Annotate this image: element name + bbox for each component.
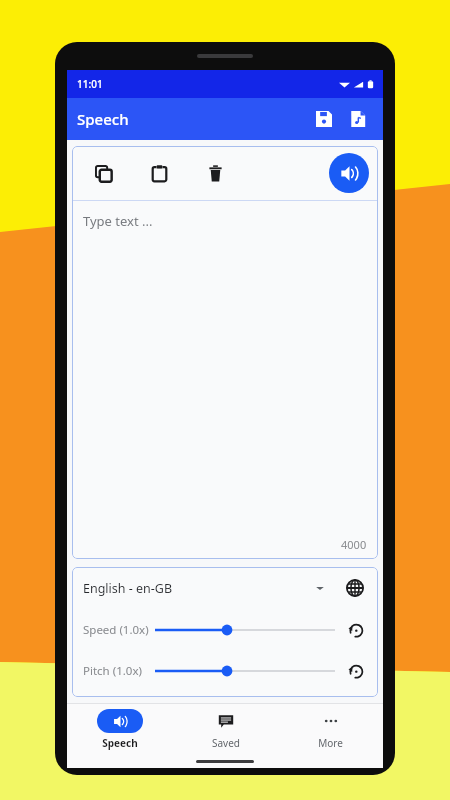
staticText: Speed (1.0x): [83, 622, 155, 638]
staticText: English - en-GB: [83, 580, 315, 597]
staticText: More: [318, 736, 343, 750]
button[interactable]: English - en-GB: [72, 567, 339, 609]
staticText: Speech: [77, 109, 307, 129]
staticText: 11:01: [77, 77, 103, 91]
button[interactable]: Paste: [141, 155, 177, 191]
staticText: Speech: [102, 736, 138, 750]
button[interactable]: Reset Speed (1.0x): [341, 615, 371, 645]
button[interactable]: Language settings: [339, 572, 371, 604]
button[interactable]: [155, 656, 335, 686]
button[interactable]: Saved: [173, 704, 278, 754]
staticText: Saved: [212, 736, 240, 750]
button[interactable]: Reset Pitch (1.0x): [341, 656, 371, 686]
button[interactable]: Speech: [67, 704, 173, 754]
staticText: Type text ...: [83, 212, 153, 230]
staticText: Pitch (1.0x): [83, 663, 155, 679]
button[interactable]: Save: [307, 102, 341, 136]
staticText: 4000: [341, 537, 367, 552]
button[interactable]: Speak: [329, 153, 369, 193]
button[interactable]: More: [278, 704, 383, 754]
button[interactable]: Copy: [85, 155, 121, 191]
button[interactable]: Clear text: [197, 155, 233, 191]
button[interactable]: Save as audio file: [341, 102, 375, 136]
button[interactable]: [155, 615, 335, 645]
